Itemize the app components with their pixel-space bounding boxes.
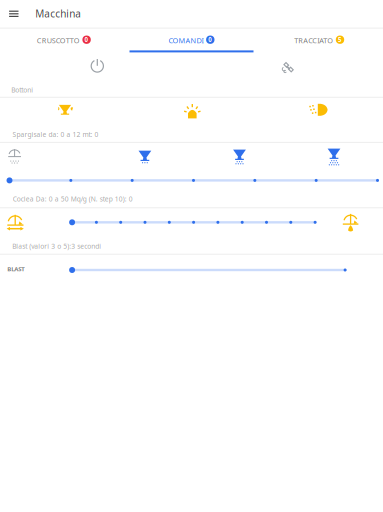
staticText: 5 (338, 35, 342, 44)
button[interactable]: Spargisale ampiezza 1 (131, 146, 159, 168)
button[interactable]: Spargisale ampiezza 3 (320, 146, 348, 168)
staticText: CRUSCOTTO (37, 35, 80, 45)
staticText: Spargisale da: 0 a 12 mt: 0 (13, 130, 99, 139)
staticText: BLAST (7, 265, 24, 273)
staticText: COMANDI (168, 35, 203, 45)
button[interactable]: TRACCIATO (256, 28, 383, 52)
staticText: 0 (85, 35, 89, 44)
button[interactable]: Accensione (83, 54, 111, 78)
button[interactable]: Spargisale ampiezza 2 (225, 146, 253, 168)
staticText: Macchina (35, 7, 81, 20)
staticText: Blast (valori 3 o 5):3 secondi (12, 242, 101, 251)
button[interactable]: COMANDI (128, 28, 255, 52)
staticText: Coclea Da: 0 a 50 Mq/g (N. step 10): 0 (13, 194, 133, 204)
staticText: TRACCIATO (294, 35, 333, 45)
button[interactable]: Spargisale (48, 98, 82, 122)
staticText: 0 (208, 35, 212, 44)
staticText: Bottoni (11, 85, 33, 94)
button[interactable]: Menu (1, 1, 27, 27)
button[interactable]: CRUSCOTTO (0, 28, 127, 52)
button[interactable]: Disconnessione (274, 55, 302, 79)
button[interactable]: Spruzzo (301, 98, 335, 122)
button[interactable]: Lampeggiante (175, 99, 209, 123)
